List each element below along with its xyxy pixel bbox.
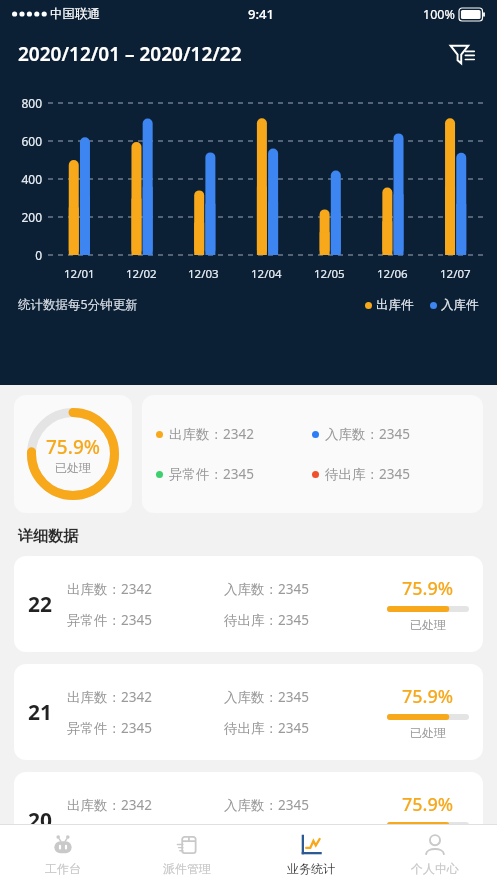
button[interactable]: 75.9% xyxy=(14,395,132,513)
staticText: 入库数：2345 xyxy=(224,688,381,706)
staticText: 75.9% xyxy=(402,576,454,601)
button[interactable]: 出库数： xyxy=(142,395,483,513)
staticText: 异常件：2345 xyxy=(67,827,224,845)
staticText: 已处理 xyxy=(410,833,446,848)
staticText: 2345 xyxy=(223,465,254,483)
staticText: 待出库：2345 xyxy=(224,827,381,845)
staticText: 异常件： xyxy=(169,466,223,483)
button[interactable]: 21 xyxy=(14,664,483,760)
staticText: 20 xyxy=(28,806,53,835)
staticText: 12/05 xyxy=(314,266,345,282)
staticText: 入库数： xyxy=(325,426,379,443)
staticText: 12/03 xyxy=(188,266,219,282)
staticText: 9:41 xyxy=(248,5,274,23)
button[interactable]: 个人中心 xyxy=(373,825,497,883)
staticText: 出库数：2342 xyxy=(67,688,224,706)
button[interactable]: Filter xyxy=(445,37,479,71)
staticText: 入库数：2345 xyxy=(224,796,381,814)
staticText: 工作台 xyxy=(45,861,81,876)
staticText: 中国联通 xyxy=(50,6,100,22)
staticText: 600 xyxy=(0,133,42,149)
staticText: 入库件 xyxy=(441,297,479,313)
staticText: 已处理 xyxy=(55,460,91,475)
staticText: 2345 xyxy=(379,425,410,443)
staticText: 12/02 xyxy=(126,266,157,282)
staticText: 待出库：2345 xyxy=(224,719,381,737)
staticText: 75.9% xyxy=(46,434,100,460)
staticText: 200 xyxy=(0,209,42,225)
staticText: 12/06 xyxy=(377,266,408,282)
staticText: 2345 xyxy=(379,465,410,483)
staticText: 出库数： xyxy=(169,426,223,443)
staticText: 已处理 xyxy=(410,725,446,740)
staticText: 已处理 xyxy=(410,617,446,632)
staticText: 800 xyxy=(0,95,42,111)
staticText: 派件管理 xyxy=(163,861,211,876)
staticText: 22 xyxy=(28,590,53,619)
staticText: 2020/12/01 – 2020/12/22 xyxy=(18,41,242,67)
staticText: 12/04 xyxy=(251,266,282,282)
staticText: 400 xyxy=(0,171,42,187)
staticText: 统计数据每5分钟更新 xyxy=(18,296,138,313)
staticText: 75.9% xyxy=(402,684,454,709)
staticText: 异常件：2345 xyxy=(67,719,224,737)
button[interactable]: 派件管理 xyxy=(125,825,249,883)
button[interactable]: 20 xyxy=(14,772,483,868)
staticText: 2342 xyxy=(223,425,254,443)
staticText: 异常件：2345 xyxy=(67,611,224,629)
staticText: 0 xyxy=(0,247,42,263)
staticText: 个人中心 xyxy=(411,861,459,876)
staticText: 12/01 xyxy=(64,266,95,282)
staticText: 待出库：2345 xyxy=(224,611,381,629)
staticText: 出库数：2342 xyxy=(67,796,224,814)
staticText: 出库件 xyxy=(376,297,414,313)
staticText: 12/07 xyxy=(440,266,471,282)
button[interactable]: 22 xyxy=(14,556,483,652)
button[interactable]: 业务统计 xyxy=(249,825,373,883)
staticText: 75.9% xyxy=(402,792,454,817)
staticText: 待出库： xyxy=(325,466,379,483)
button[interactable]: 工作台 xyxy=(0,825,125,883)
staticText: 详细数据 xyxy=(18,527,78,546)
staticText: 入库数：2345 xyxy=(224,580,381,598)
staticText: 业务统计 xyxy=(287,861,335,876)
staticText: 出库数：2342 xyxy=(67,580,224,598)
staticText: 100% xyxy=(423,6,455,23)
staticText: 21 xyxy=(28,698,53,727)
